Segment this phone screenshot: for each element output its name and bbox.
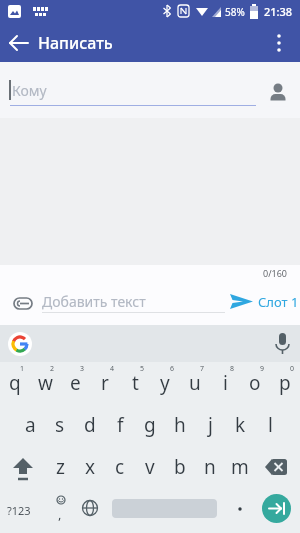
button[interactable] [262, 494, 291, 523]
staticText: 5 [140, 364, 145, 374]
button[interactable]: c [105, 446, 135, 488]
button[interactable] [270, 330, 296, 358]
button[interactable]: Слот 1 [230, 290, 299, 314]
button[interactable] [10, 290, 40, 316]
staticText: 58% [225, 5, 245, 19]
staticText: p [279, 370, 291, 396]
button[interactable] [255, 446, 300, 488]
button[interactable]: t [120, 362, 150, 404]
staticText: j [208, 412, 213, 438]
staticText: 4 [110, 364, 115, 374]
button[interactable]: m [225, 446, 255, 488]
button[interactable]: f [105, 404, 135, 446]
button[interactable]: w [30, 362, 60, 404]
button[interactable]: ?123 [0, 488, 37, 533]
staticText: o [249, 370, 261, 396]
button[interactable] [8, 332, 32, 356]
button[interactable]: Кому [0, 62, 300, 118]
staticText: 3 [80, 364, 85, 374]
button[interactable]: u [180, 362, 210, 404]
staticText: z [56, 454, 65, 480]
staticText: c [115, 454, 125, 480]
staticText: x [85, 454, 96, 480]
button[interactable]: n [195, 446, 225, 488]
button[interactable]: x [75, 446, 105, 488]
button[interactable]: v [135, 446, 165, 488]
staticText: r [101, 370, 109, 396]
staticText: 21:38 [264, 4, 293, 19]
button[interactable]: q [0, 362, 30, 404]
staticText: n [204, 454, 216, 480]
button[interactable]: i [210, 362, 240, 404]
button[interactable]: s [45, 404, 75, 446]
button[interactable]: h [165, 404, 195, 446]
staticText: Кому [12, 81, 47, 100]
staticText: 0/160 [263, 267, 287, 279]
staticText: Добавить текст [42, 292, 146, 311]
staticText: 9 [260, 364, 265, 374]
staticText: u [189, 370, 201, 396]
button[interactable]: p [270, 362, 300, 404]
staticText: 0 [290, 364, 295, 374]
staticText: h [174, 412, 186, 438]
staticText: q [9, 370, 21, 396]
button[interactable]: j [195, 404, 225, 446]
button[interactable] [225, 488, 255, 533]
staticText: 8 [230, 364, 235, 374]
staticText: b [174, 454, 186, 480]
staticText: f [117, 412, 124, 438]
button[interactable]: a [15, 404, 45, 446]
button[interactable]: r [90, 362, 120, 404]
button[interactable] [266, 28, 296, 58]
staticText: Написать [38, 32, 113, 54]
staticText: t [132, 370, 139, 396]
button[interactable]: k [225, 404, 255, 446]
staticText: 6 [170, 364, 175, 374]
button[interactable] [75, 488, 105, 533]
staticText: e [70, 370, 81, 396]
button[interactable]: e [60, 362, 90, 404]
staticText: l [268, 412, 273, 438]
staticText: s [55, 412, 65, 438]
staticText: Слот 1 [258, 293, 299, 311]
button[interactable]: l [255, 404, 285, 446]
staticText: m [231, 454, 249, 480]
button[interactable] [4, 28, 34, 58]
staticText: 2 [50, 364, 55, 374]
button[interactable] [0, 446, 45, 488]
button[interactable]: o [240, 362, 270, 404]
staticText: g [144, 412, 156, 438]
button[interactable]: , [45, 488, 75, 533]
button[interactable]: b [165, 446, 195, 488]
button[interactable]: y [150, 362, 180, 404]
staticText: w [38, 370, 53, 396]
staticText: k [235, 412, 246, 438]
button[interactable]: z [45, 446, 75, 488]
staticText: , [58, 505, 62, 523]
button[interactable]: g [135, 404, 165, 446]
button[interactable]: d [75, 404, 105, 446]
staticText: a [25, 412, 36, 438]
staticText: 1 [20, 364, 25, 374]
staticText: 7 [200, 364, 205, 374]
staticText: d [84, 412, 96, 438]
staticText: ?123 [7, 503, 31, 518]
staticText: y [160, 370, 170, 396]
staticText: v [145, 454, 155, 480]
staticText: i [223, 370, 228, 396]
